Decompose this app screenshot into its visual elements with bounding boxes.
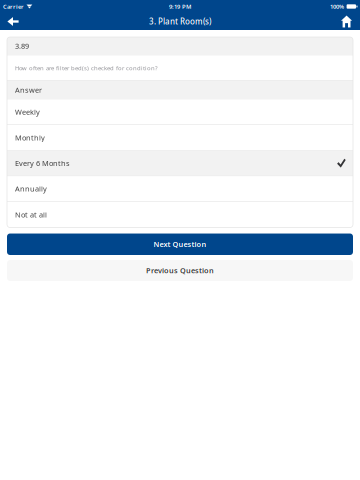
staticText: Not at all	[15, 210, 47, 220]
staticText: Next Question	[153, 239, 206, 249]
staticText: Monthly	[15, 133, 45, 143]
staticText: How often are filter bed(s) checked for …	[15, 64, 158, 72]
button[interactable]: Annually	[7, 176, 353, 202]
button[interactable]: Back	[0, 13, 26, 30]
staticText: 9:19 PM	[169, 2, 191, 10]
staticText: Answer	[15, 85, 42, 95]
button[interactable]: Previous Question	[7, 260, 353, 281]
staticText: 100%	[330, 2, 344, 10]
staticText: Annually	[15, 184, 47, 194]
button[interactable]: Every 6 Months	[7, 151, 353, 176]
button[interactable]: Not at all	[7, 202, 353, 227]
staticText: Weekly	[15, 107, 40, 117]
staticText: 3. Plant Room(s)	[149, 16, 211, 27]
staticText: 3.89	[15, 41, 29, 51]
staticText: Carrier	[3, 2, 24, 10]
button[interactable]: Next Question	[7, 233, 353, 255]
button[interactable]: Weekly	[7, 99, 353, 125]
button[interactable]: Home	[337, 13, 356, 30]
button[interactable]: Monthly	[7, 125, 353, 151]
staticText: Previous Question	[146, 265, 214, 275]
staticText: Every 6 Months	[15, 158, 70, 168]
